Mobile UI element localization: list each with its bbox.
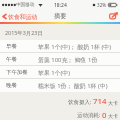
staticText: 32% (97, 2, 107, 8)
button[interactable]: 午餐 (0, 53, 120, 66)
staticText: 0 (102, 110, 107, 120)
staticText: 714 (93, 96, 107, 107)
button[interactable]: 下午加餐 (0, 66, 120, 79)
staticText: 饮食摄入: (68, 98, 92, 106)
staticText: 运动消耗: (77, 111, 101, 119)
button[interactable]: 饮食和运动 (1, 10, 39, 22)
staticText: 苹果 1个(中) (38, 69, 118, 77)
staticText: 摘要 (54, 12, 67, 20)
staticText: 糯米饭 1份； 酸奶 1杯 (中) (38, 82, 118, 90)
staticText: 大卡 (108, 100, 118, 106)
staticText: 饮食和运动 (8, 13, 38, 20)
staticText: 2015年3月23日 (5, 29, 43, 36)
staticText: 下午加餐 (6, 69, 38, 76)
staticText: 早餐 (6, 43, 38, 50)
staticText: 18:24 (54, 2, 67, 9)
staticText: 蛋羹 100克； 鲫鱼 1份 (38, 56, 118, 64)
button[interactable]: Share (107, 10, 119, 22)
button[interactable]: 晚餐 (0, 79, 120, 92)
staticText: 苹果 1个(中)； 酸奶 1杯 (中) (38, 43, 118, 51)
staticText: 中国移动 (16, 2, 35, 8)
staticText: 午餐 (6, 56, 38, 63)
staticText: 大卡 (108, 113, 118, 119)
staticText: 晚餐 (6, 82, 38, 89)
button[interactable]: 早餐 (0, 40, 120, 53)
